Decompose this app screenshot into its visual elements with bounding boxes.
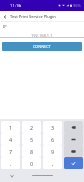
button[interactable]: 8 xyxy=(22,145,41,157)
staticText: 2 xyxy=(30,124,34,131)
button[interactable]: 4 xyxy=(1,133,20,145)
staticText: 9 xyxy=(51,148,55,155)
button[interactable]: 1 xyxy=(1,121,20,133)
staticText: IP xyxy=(3,24,7,29)
button[interactable]: Hide keyboard xyxy=(8,172,15,179)
staticText: Test Print Service Plugin xyxy=(10,14,56,19)
staticText: 5 xyxy=(30,136,34,143)
button[interactable]: Camera xyxy=(64,145,83,157)
button[interactable]: . xyxy=(1,157,20,169)
staticText: 192.168.1.1 xyxy=(31,33,53,38)
staticText: 0 xyxy=(30,160,34,167)
button[interactable]: Back xyxy=(0,11,10,22)
button[interactable]: 3 xyxy=(43,121,62,133)
button[interactable]: 5 xyxy=(22,133,41,145)
staticText: 8 xyxy=(30,148,34,155)
staticText: 7 xyxy=(9,148,13,155)
staticText: 3 xyxy=(51,124,55,131)
staticText: CONNECT xyxy=(33,44,51,49)
button[interactable]: , xyxy=(43,157,62,169)
button[interactable]: 6 xyxy=(43,133,62,145)
staticText: 4 xyxy=(9,136,13,143)
button[interactable]: 0 xyxy=(22,157,41,169)
staticText: 6 xyxy=(51,136,55,143)
button[interactable]: Done xyxy=(64,157,83,169)
button[interactable]: Backspace xyxy=(64,121,83,133)
button[interactable]: 9 xyxy=(43,145,62,157)
staticText: 96% xyxy=(73,3,81,8)
button[interactable]: Space xyxy=(64,133,83,145)
staticText: , xyxy=(52,160,54,167)
button[interactable]: 2 xyxy=(22,121,41,133)
staticText: . xyxy=(10,160,12,167)
button[interactable]: CONNECT xyxy=(2,42,82,51)
staticText: 1 xyxy=(9,124,13,131)
button[interactable]: 7 xyxy=(1,145,20,157)
staticText: 11:16 xyxy=(10,3,21,9)
